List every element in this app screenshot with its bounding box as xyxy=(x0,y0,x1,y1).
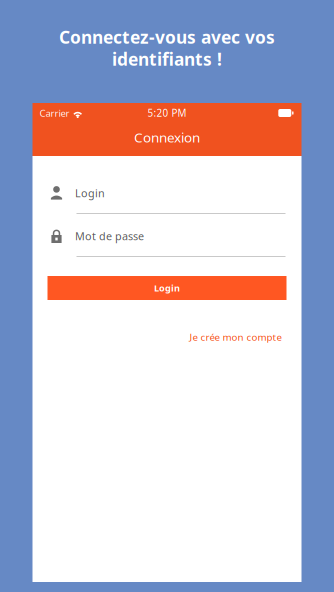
staticText: Mot de passe xyxy=(75,229,144,243)
button[interactable]: Login xyxy=(47,276,286,300)
staticText: Login xyxy=(75,186,105,200)
staticText: 5:20 PM xyxy=(147,106,186,120)
staticText: Login xyxy=(154,282,180,294)
staticText: Connectez-vous avec vos xyxy=(59,25,275,48)
button[interactable]: Je crée mon compte xyxy=(47,330,286,344)
staticText: Je crée mon compte xyxy=(189,330,281,344)
staticText: identifiants ! xyxy=(112,47,222,70)
staticText: Carrier xyxy=(39,106,69,120)
staticText: Connexion xyxy=(134,128,200,146)
